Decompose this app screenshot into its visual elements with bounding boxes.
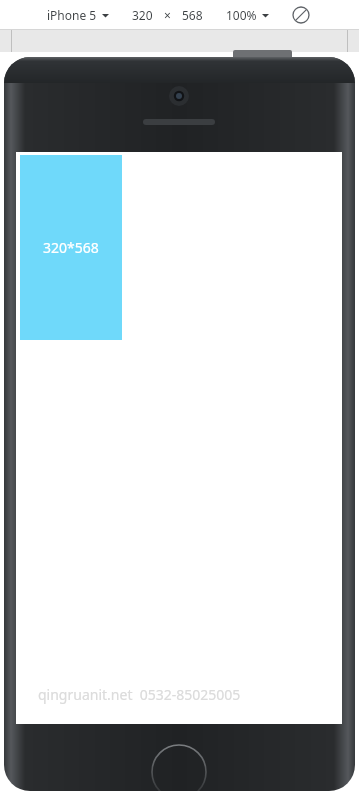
staticText: × <box>164 7 171 23</box>
staticText: qingruanit.net 0532-85025005 <box>38 685 241 704</box>
button[interactable]: iPhone 5 <box>44 7 112 23</box>
button[interactable]: 100% <box>223 7 272 23</box>
staticText: iPhone 5 <box>47 7 97 23</box>
staticText: 100% <box>226 7 257 23</box>
staticText: 320 <box>132 7 153 23</box>
button[interactable]: Rotate device <box>290 4 312 26</box>
staticText: 320*568 <box>43 238 99 257</box>
button[interactable]: 320*568 <box>20 155 122 340</box>
staticText: 568 <box>182 7 203 23</box>
